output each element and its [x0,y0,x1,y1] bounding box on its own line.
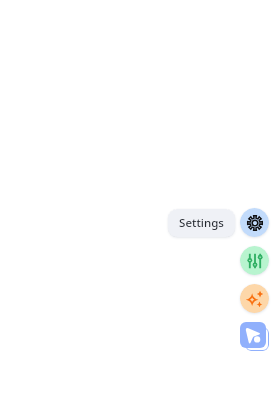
staticText: Settings [179,215,224,231]
button[interactable]: Settings [240,208,269,237]
button[interactable]: Enhance [240,284,269,313]
button[interactable]: Settings [168,209,235,237]
button[interactable]: Assistant [240,322,266,348]
button[interactable]: Adjust settings [240,246,269,275]
